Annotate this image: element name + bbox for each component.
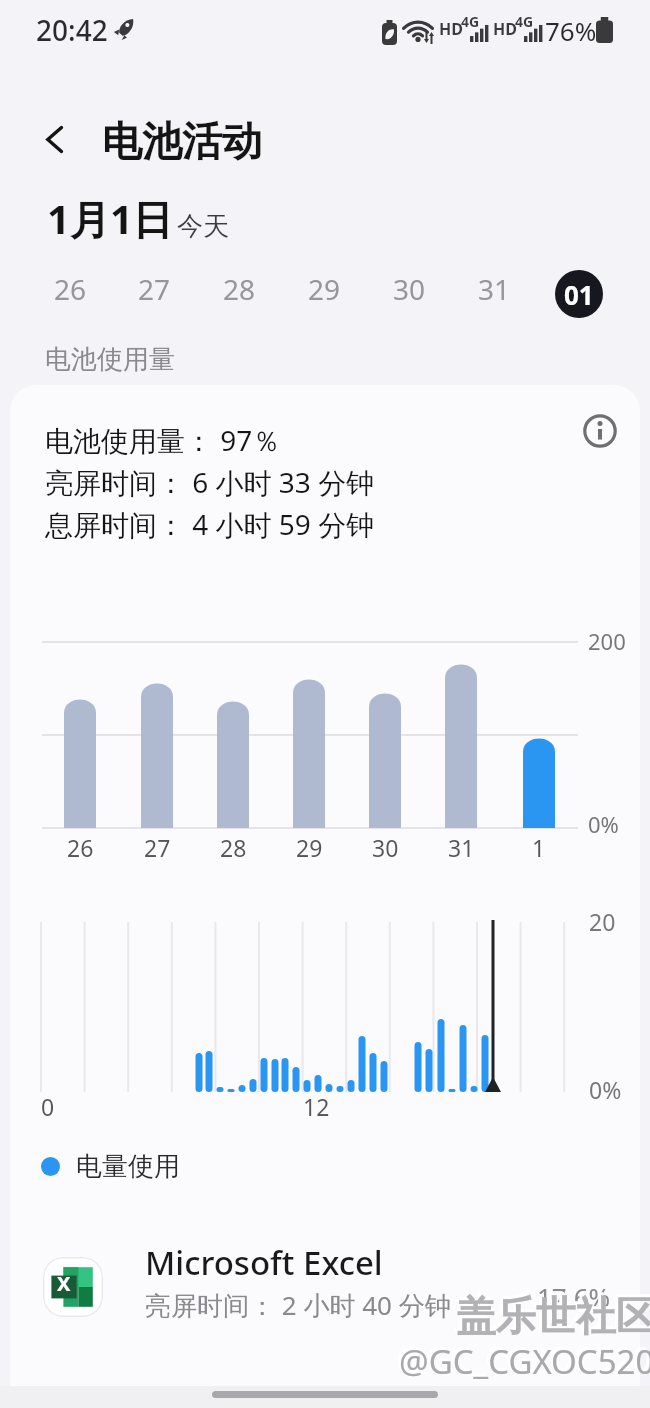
- staticText: 30: [393, 270, 426, 308]
- staticText: 亮屏时间： 6 小时 33 分钟: [45, 463, 375, 501]
- button[interactable]: 29: [282, 265, 367, 313]
- staticText: 1: [532, 832, 546, 863]
- staticText: 0%: [588, 809, 619, 839]
- staticText: @GC_CGXOC520: [399, 1339, 650, 1384]
- staticText: 息屏时间： 4 小时 59 分钟: [45, 505, 375, 543]
- staticText: 4G: [461, 12, 480, 31]
- staticText: HD: [493, 18, 517, 40]
- staticText: 31: [448, 832, 475, 863]
- staticText: 01: [564, 277, 594, 312]
- staticText: 0: [41, 1091, 55, 1122]
- staticText: 电池使用量: [45, 343, 175, 376]
- button[interactable]: 27: [112, 265, 197, 313]
- staticText: 1月1日: [47, 191, 173, 246]
- staticText: 20: [589, 906, 616, 937]
- staticText: 29: [296, 832, 323, 863]
- staticText: 盖乐世社区: [456, 1291, 650, 1341]
- staticText: 电量使用: [76, 1150, 180, 1183]
- button[interactable]: [10, 1237, 640, 1335]
- staticText: 27: [144, 832, 171, 863]
- button[interactable]: [583, 414, 617, 448]
- staticText: 76%: [545, 13, 597, 48]
- staticText: 0%: [589, 1074, 622, 1105]
- staticText: 26: [67, 832, 94, 863]
- staticText: 盖乐世社区: [453, 1288, 650, 1338]
- staticText: 4G: [515, 12, 534, 31]
- staticText: 26: [54, 270, 87, 308]
- staticText: 200: [588, 626, 626, 656]
- staticText: 今天: [177, 210, 229, 243]
- staticText: 亮屏时间： 2 小时 40 分钟: [145, 1287, 451, 1323]
- staticText: 电池活动: [102, 116, 262, 166]
- staticText: 电池使用量： 97％: [45, 421, 281, 459]
- button[interactable]: 30: [367, 265, 452, 313]
- staticText: 31: [478, 270, 511, 308]
- button[interactable]: 01: [555, 270, 603, 318]
- button[interactable]: 31: [452, 265, 537, 313]
- staticText: 30: [372, 832, 399, 863]
- button[interactable]: 26: [28, 265, 112, 313]
- staticText: 29: [308, 270, 341, 308]
- staticText: Microsoft Excel: [145, 1240, 383, 1285]
- staticText: X: [57, 1270, 71, 1297]
- staticText: HD: [439, 18, 463, 40]
- staticText: 27: [138, 270, 171, 308]
- staticText: @GC_CGXOC520: [396, 1336, 650, 1381]
- staticText: 12: [303, 1091, 330, 1122]
- button[interactable]: [46, 126, 63, 153]
- staticText: 17.6%: [537, 1279, 611, 1314]
- staticText: 20:42: [36, 11, 108, 49]
- staticText: 28: [220, 832, 247, 863]
- staticText: 28: [223, 270, 256, 308]
- button[interactable]: 28: [197, 265, 282, 313]
